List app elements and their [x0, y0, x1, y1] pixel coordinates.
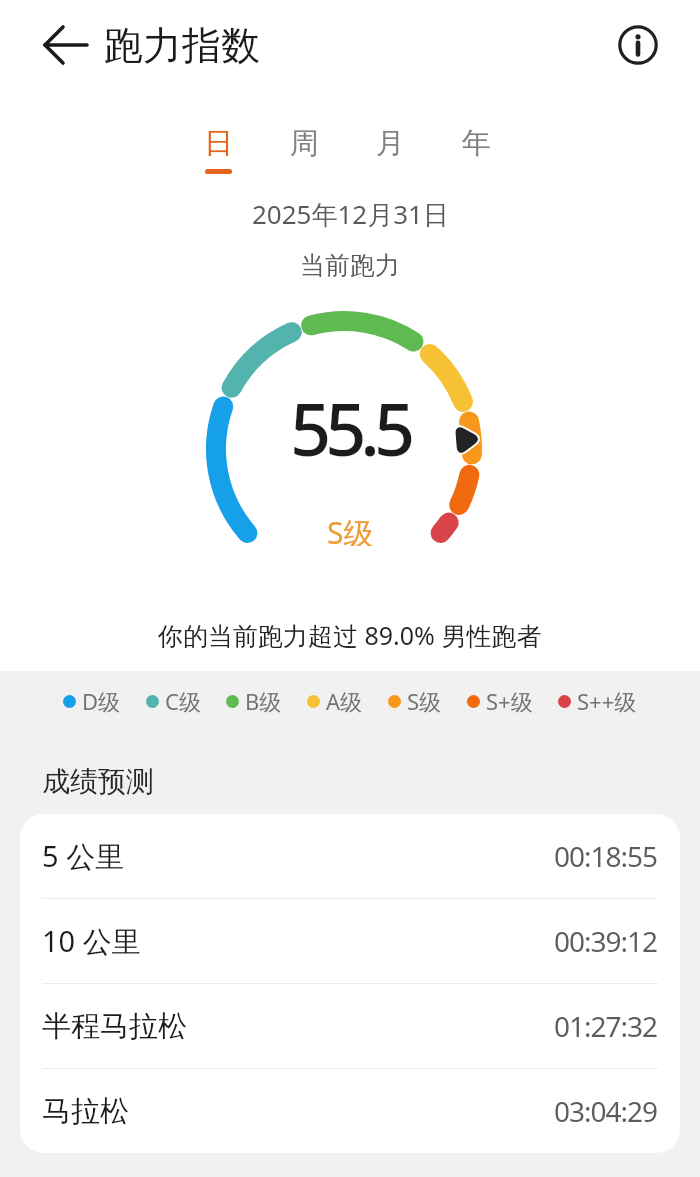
staticText: C级: [165, 686, 201, 716]
staticText: 月: [376, 125, 405, 162]
staticText: 马拉松: [42, 1093, 129, 1130]
staticText: 01:27:32: [554, 1007, 658, 1045]
staticText: 00:18:55: [554, 837, 658, 875]
button[interactable]: S++级: [558, 686, 637, 716]
button[interactable]: [615, 22, 661, 68]
staticText: S级: [327, 512, 374, 546]
staticText: 日: [204, 125, 233, 162]
button[interactable]: C级: [146, 686, 201, 716]
staticText: 10 公里: [42, 921, 141, 961]
staticText: 跑力指数: [104, 21, 260, 70]
button[interactable]: 5 公里: [20, 814, 680, 898]
staticText: 成绩预测: [42, 764, 154, 796]
button[interactable]: 半程马拉松: [20, 984, 680, 1068]
staticText: 5 公里: [42, 836, 125, 876]
button[interactable]: A级: [307, 686, 363, 716]
staticText: A级: [326, 686, 363, 716]
button[interactable]: 周: [290, 123, 319, 174]
button[interactable]: S+级: [467, 686, 533, 716]
staticText: 你的当前跑力超过 89.0% 男性跑者: [158, 618, 542, 652]
staticText: D级: [82, 686, 121, 716]
staticText: 2025年12月31日: [252, 196, 449, 232]
staticText: B级: [245, 686, 282, 716]
staticText: S级: [407, 686, 442, 716]
staticText: S++级: [577, 686, 637, 716]
staticText: 当前跑力: [300, 250, 400, 281]
staticText: 00:39:12: [554, 922, 658, 960]
staticText: S+级: [486, 686, 533, 716]
button[interactable]: 月: [376, 123, 405, 174]
staticText: 周: [290, 125, 319, 162]
button[interactable]: D级: [63, 686, 121, 716]
button[interactable]: S级: [388, 686, 442, 716]
staticText: 年: [462, 125, 491, 162]
staticText: 55.5: [290, 379, 410, 477]
button[interactable]: [43, 22, 89, 68]
staticText: 半程马拉松: [42, 1008, 187, 1045]
button[interactable]: B级: [226, 686, 282, 716]
staticText: 03:04:29: [554, 1092, 658, 1130]
button[interactable]: 年: [462, 123, 491, 174]
button[interactable]: 马拉松: [20, 1069, 680, 1153]
button[interactable]: 10 公里: [20, 899, 680, 983]
button[interactable]: 日: [204, 123, 233, 174]
